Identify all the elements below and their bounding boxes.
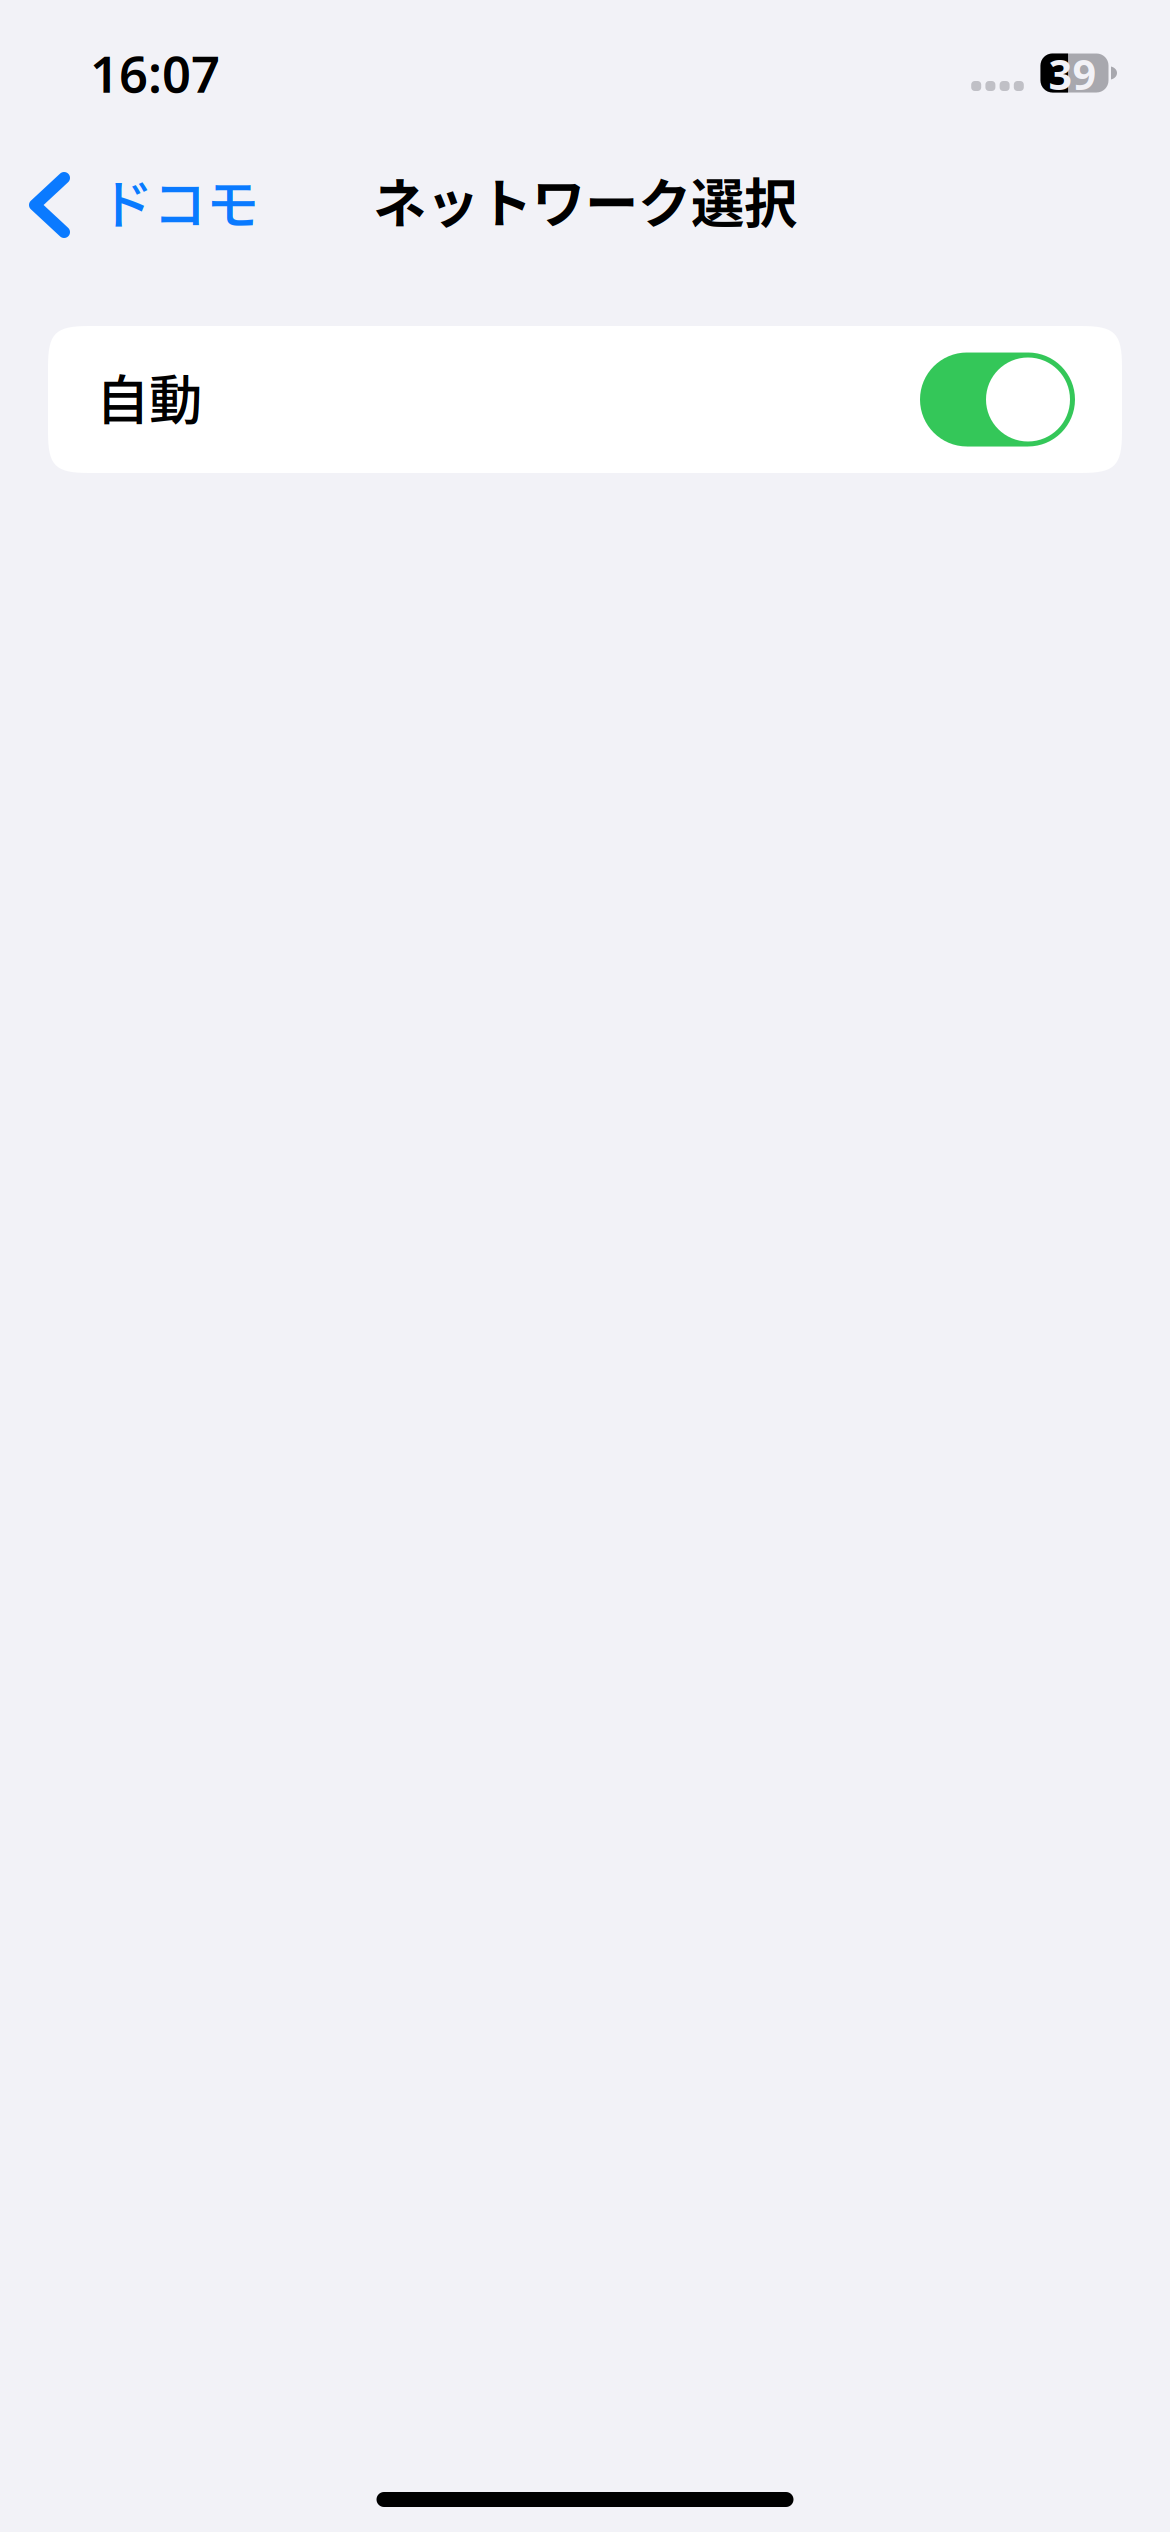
staticText: 自動 <box>96 358 202 435</box>
staticText: 39 <box>1048 47 1096 101</box>
staticText: ネットワーク選択 <box>373 161 797 239</box>
staticText: ドコモ <box>100 162 259 240</box>
button[interactable]: 自動 <box>48 326 1122 473</box>
staticText: 16:07 <box>90 39 220 107</box>
button[interactable]: オン <box>920 352 1075 446</box>
button[interactable]: 戻る ドコモ <box>0 152 275 258</box>
